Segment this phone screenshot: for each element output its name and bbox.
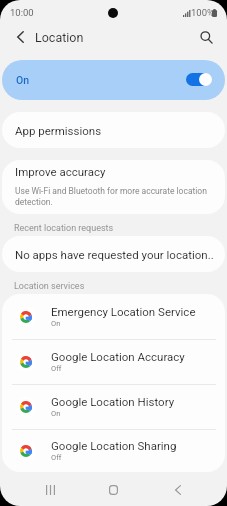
button[interactable]: Back (8, 25, 32, 49)
staticText: App permissions (15, 124, 102, 137)
staticText: Google Location History (51, 395, 175, 408)
staticText: Google Location Accuracy (51, 350, 185, 363)
button[interactable]: On (2, 60, 225, 100)
button[interactable]: Home (98, 476, 129, 506)
button[interactable]: Google Location History (2, 384, 225, 429)
staticText: Recent location requests (14, 223, 114, 234)
button[interactable]: Emergency Location Service (2, 294, 225, 339)
staticText: Off (51, 364, 62, 373)
staticText: On (16, 74, 30, 86)
staticText: 100% (191, 7, 214, 18)
button[interactable]: Google Location Sharing (2, 429, 225, 472)
button[interactable]: App permissions (2, 112, 225, 148)
staticText: Emergency Location Service (51, 305, 196, 318)
button[interactable]: Google Location Accuracy (2, 339, 225, 384)
staticText: Location (35, 30, 84, 45)
staticText: No apps have requested your location.. (15, 248, 214, 261)
staticText: On (51, 319, 61, 328)
staticText: Improve accuracy (15, 165, 106, 178)
button[interactable]: Recent apps (35, 476, 66, 506)
staticText: Google Location Sharing (51, 439, 177, 452)
staticText: Use Wi-Fi and Bluetooth for more accurat… (15, 186, 210, 207)
staticText: On (51, 409, 61, 418)
button[interactable]: Improve accuracy (2, 160, 225, 214)
staticText: 10:00 (10, 7, 34, 18)
staticText: Location services (14, 281, 85, 292)
button[interactable]: No apps have requested your location.. (2, 236, 225, 272)
button[interactable]: Search (194, 25, 218, 49)
staticText: Off (51, 453, 62, 462)
button[interactable]: Back (162, 476, 193, 506)
